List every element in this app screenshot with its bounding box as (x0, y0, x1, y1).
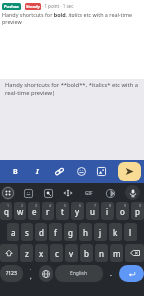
staticText: n (99, 248, 104, 259)
button[interactable]: Steady (25, 3, 41, 10)
button[interactable]: f (49, 223, 62, 241)
staticText: d (39, 227, 44, 238)
button[interactable]: q (0, 202, 12, 220)
staticText: 7 (94, 203, 97, 208)
button[interactable]: Backspace (125, 244, 144, 262)
staticText: English (70, 270, 88, 277)
button[interactable]: GIF (82, 186, 96, 200)
button[interactable]: Language (39, 265, 53, 282)
button[interactable]: x (35, 244, 48, 262)
button[interactable]: w (14, 202, 26, 220)
staticText: j (99, 227, 102, 238)
staticText: w (17, 206, 24, 217)
staticText: B (13, 167, 18, 177)
staticText: t (61, 206, 64, 217)
button[interactable]: n (95, 244, 108, 262)
button[interactable]: v (65, 244, 78, 262)
button[interactable]: e (28, 202, 40, 220)
button[interactable]: d (35, 223, 47, 241)
button[interactable]: Italic (31, 165, 44, 178)
staticText: e (32, 206, 37, 217)
staticText: i (106, 206, 109, 217)
button[interactable]: t (56, 202, 69, 220)
button[interactable]: k (109, 223, 122, 241)
button[interactable]: z (20, 244, 33, 262)
button[interactable]: · (25, 265, 37, 282)
button[interactable]: s (21, 223, 33, 241)
staticText: m (113, 248, 121, 259)
button[interactable]: Search (41, 186, 55, 200)
staticText: f (54, 227, 57, 238)
staticText: p (135, 206, 140, 217)
button[interactable]: Image (95, 165, 108, 178)
staticText: c (55, 248, 59, 259)
staticText: y (75, 206, 80, 217)
staticText: 3 (35, 203, 38, 208)
button[interactable]: Send (118, 162, 141, 181)
button[interactable]: i (101, 202, 114, 220)
staticText: Handy shortcuts for **bold**, *italics* … (5, 81, 139, 96)
staticText: . (110, 269, 112, 279)
button[interactable]: English (55, 265, 103, 282)
staticText: Pushaa (4, 4, 19, 10)
staticText: 2 (21, 203, 24, 208)
button[interactable]: Google Assistant (1, 186, 15, 200)
staticText: v (69, 248, 74, 259)
button[interactable]: j (94, 223, 107, 241)
button[interactable]: Move cursor (61, 186, 75, 200)
staticText: o (120, 206, 125, 217)
staticText: u (90, 206, 95, 217)
staticText: · (22, 3, 24, 9)
button[interactable]: Shift (0, 244, 18, 262)
button[interactable]: o (116, 202, 129, 220)
button[interactable]: h (79, 223, 92, 241)
staticText: s (25, 227, 29, 238)
button[interactable]: Bold (9, 165, 22, 178)
staticText: ?123 (6, 270, 17, 277)
button[interactable]: c (50, 244, 63, 262)
button[interactable]: u (86, 202, 99, 220)
button[interactable]: Voice input (125, 185, 140, 200)
button[interactable]: m (110, 244, 123, 262)
staticText: 8 (109, 203, 112, 208)
staticText: q (4, 206, 9, 217)
staticText: 0 (139, 203, 142, 208)
button[interactable]: Pushaa (2, 3, 21, 10)
staticText: z (25, 248, 29, 259)
button[interactable]: . (105, 265, 117, 282)
button[interactable]: p (131, 202, 144, 220)
staticText: Steady (26, 4, 40, 10)
staticText: h (83, 227, 88, 238)
staticText: 4 (49, 203, 52, 208)
staticText: x (39, 248, 44, 259)
button[interactable]: Enter (119, 265, 144, 282)
button[interactable]: a (7, 223, 19, 241)
staticText: GIF (85, 190, 93, 196)
staticText: Handy shortcuts for bold, italics etc wi… (2, 11, 142, 25)
button[interactable]: Stickers (21, 186, 35, 200)
button[interactable]: l (124, 223, 137, 241)
staticText: 5 (64, 203, 67, 208)
staticText: 1 (7, 203, 10, 208)
button[interactable]: Emoji (75, 165, 88, 178)
button[interactable]: ?123 (0, 265, 23, 282)
staticText: g (68, 227, 73, 238)
button[interactable]: y (71, 202, 84, 220)
button[interactable]: r (42, 202, 54, 220)
staticText: a (11, 227, 16, 238)
button[interactable]: Link (53, 165, 66, 178)
staticText: l (129, 227, 132, 238)
staticText: I (36, 167, 39, 177)
staticText: 9 (124, 203, 127, 208)
staticText: k (113, 227, 118, 238)
staticText: · (30, 266, 32, 273)
staticText: , (30, 273, 32, 281)
staticText: 6 (79, 203, 82, 208)
button[interactable]: b (80, 244, 93, 262)
staticText: r (46, 206, 50, 217)
staticText: · 1 point · 1 sec (42, 3, 74, 9)
staticText: b (84, 248, 89, 259)
button[interactable]: g (64, 223, 77, 241)
button[interactable]: Theme (103, 186, 117, 200)
